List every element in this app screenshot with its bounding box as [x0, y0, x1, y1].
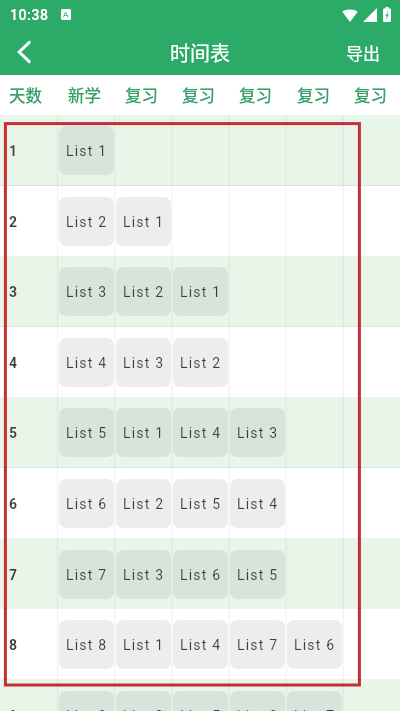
staticText: List 1	[123, 637, 165, 653]
button[interactable]: 6	[0, 468, 400, 539]
staticText: List 1	[123, 214, 165, 230]
button[interactable]: List 2	[116, 267, 171, 316]
button[interactable]: 复习	[170, 75, 227, 115]
staticText: List 2	[180, 355, 222, 371]
button[interactable]: Back	[0, 29, 48, 75]
button[interactable]: List 3	[230, 408, 285, 457]
button[interactable]: 复习	[285, 75, 342, 115]
staticText: List 7	[294, 708, 336, 711]
button[interactable]: List 1	[59, 126, 114, 175]
staticText: List 2	[123, 496, 165, 512]
staticText: List 4	[237, 496, 279, 512]
staticText: List 3	[237, 425, 279, 441]
staticText: List 2	[66, 214, 108, 230]
button[interactable]: 5	[0, 397, 400, 468]
staticText: List 5	[180, 496, 222, 512]
button[interactable]: List 1	[116, 620, 171, 669]
button[interactable]: List 5	[59, 408, 114, 457]
staticText: 复习	[354, 83, 387, 107]
staticText: List 3	[123, 567, 165, 583]
button[interactable]: List 9	[59, 691, 114, 711]
staticText: 时间表	[170, 38, 230, 67]
button[interactable]: List 4	[173, 408, 228, 457]
staticText: List 3	[66, 284, 108, 300]
button[interactable]: List 5	[173, 691, 228, 711]
button[interactable]: List 1	[116, 197, 171, 246]
button[interactable]: List 1	[116, 408, 171, 457]
staticText: A	[63, 10, 69, 19]
staticText: List 6	[66, 496, 108, 512]
button[interactable]: 8	[0, 609, 400, 680]
staticText: List 2	[123, 708, 165, 711]
staticText: 复习	[297, 83, 330, 107]
staticText: List 7	[237, 637, 279, 653]
button[interactable]: 新学	[56, 75, 113, 115]
button[interactable]: 7	[0, 539, 400, 610]
button[interactable]: List 2	[59, 197, 114, 246]
button[interactable]: List 7	[59, 550, 114, 599]
button[interactable]: 复习	[342, 75, 399, 115]
staticText: 天数	[9, 83, 42, 107]
staticText: List 6	[180, 567, 222, 583]
button[interactable]: 2	[0, 186, 400, 257]
staticText: 2	[9, 214, 18, 230]
button[interactable]: List 3	[59, 267, 114, 316]
staticText: List 6	[294, 637, 336, 653]
staticText: 5	[9, 425, 18, 441]
staticText: 复习	[182, 83, 215, 107]
staticText: 7	[9, 567, 18, 583]
staticText: List 1	[180, 284, 222, 300]
button[interactable]: 4	[0, 327, 400, 398]
staticText: List 4	[180, 637, 222, 653]
button[interactable]: List 4	[173, 620, 228, 669]
button[interactable]: List 7	[230, 620, 285, 669]
staticText: List 1	[123, 425, 165, 441]
staticText: List 7	[66, 567, 108, 583]
button[interactable]: List 7	[287, 691, 342, 711]
staticText: 8	[9, 637, 18, 653]
staticText: 复习	[125, 83, 158, 107]
button[interactable]: List 6	[287, 620, 342, 669]
button[interactable]: List 1	[173, 267, 228, 316]
staticText: 新学	[68, 83, 101, 107]
staticText: List 2	[123, 284, 165, 300]
button[interactable]: 9	[0, 680, 400, 711]
staticText: 10:38	[10, 7, 49, 23]
button[interactable]: List 5	[230, 550, 285, 599]
button[interactable]: 天数	[0, 75, 54, 115]
button[interactable]: 导出	[338, 32, 388, 73]
staticText: 4	[9, 355, 18, 371]
button[interactable]: 复习	[113, 75, 170, 115]
button[interactable]: 1	[0, 115, 400, 186]
staticText: 9	[9, 708, 18, 711]
button[interactable]: List 3	[116, 550, 171, 599]
button[interactable]: List 2	[173, 338, 228, 387]
button[interactable]: 3	[0, 256, 400, 327]
staticText: List 4	[180, 425, 222, 441]
staticText: List 1	[66, 143, 108, 159]
staticText: 复习	[239, 83, 272, 107]
button[interactable]: List 6	[59, 479, 114, 528]
button[interactable]: List 5	[173, 479, 228, 528]
staticText: 3	[9, 284, 18, 300]
staticText: List 4	[66, 355, 108, 371]
staticText: List 8	[237, 708, 279, 711]
button[interactable]: List 2	[116, 691, 171, 711]
staticText: List 5	[237, 567, 279, 583]
staticText: 1	[9, 143, 18, 159]
staticText: List 9	[66, 708, 108, 711]
staticText: List 5	[180, 708, 222, 711]
button[interactable]: List 2	[116, 479, 171, 528]
button[interactable]: List 8	[230, 691, 285, 711]
staticText: List 3	[123, 355, 165, 371]
button[interactable]: List 4	[59, 338, 114, 387]
button[interactable]: 复习	[227, 75, 284, 115]
staticText: 导出	[346, 40, 380, 65]
button[interactable]: List 8	[59, 620, 114, 669]
button[interactable]: List 3	[116, 338, 171, 387]
staticText: 6	[9, 496, 18, 512]
button[interactable]: List 6	[173, 550, 228, 599]
staticText: List 8	[66, 637, 108, 653]
button[interactable]: List 4	[230, 479, 285, 528]
staticText: List 5	[66, 425, 108, 441]
